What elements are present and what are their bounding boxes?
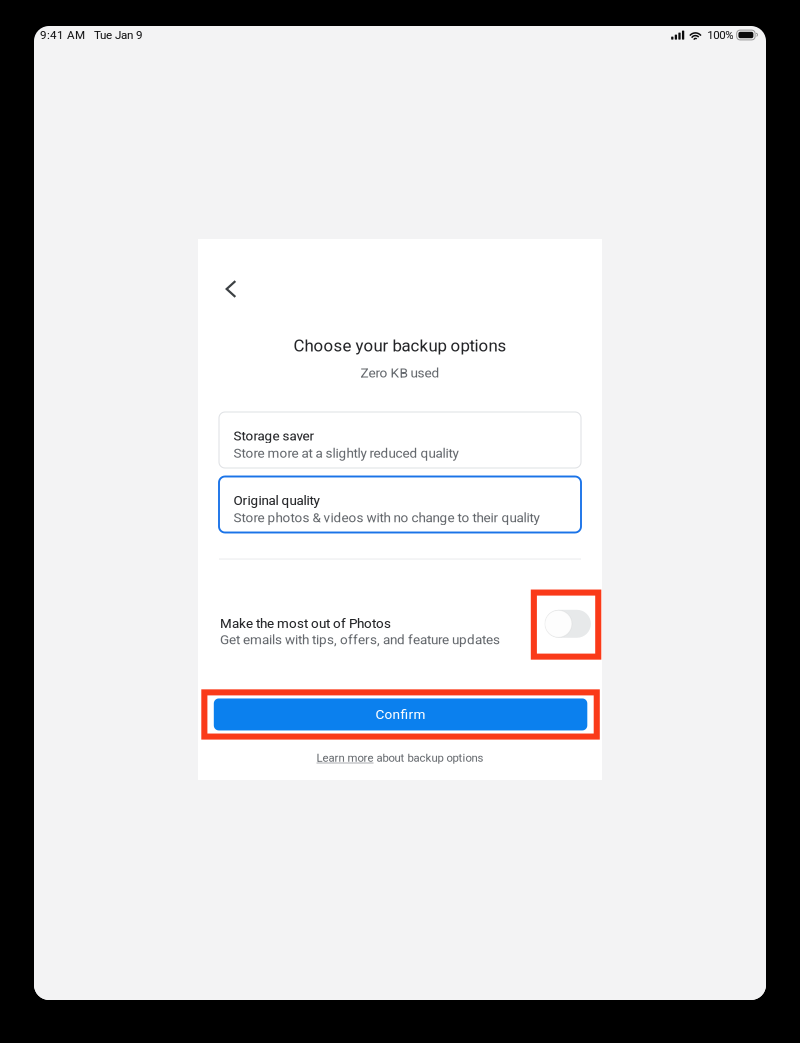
button[interactable]: Original quality: [219, 476, 581, 532]
button[interactable]: Make the most out of Photos: [531, 589, 601, 660]
staticText: 100%: [707, 28, 733, 42]
staticText: Confirm: [376, 706, 426, 722]
staticText: Store more at a slightly reduced quality: [233, 445, 458, 461]
staticText: Original quality: [233, 492, 319, 508]
staticText: Make the most out of Photos: [220, 615, 391, 631]
staticText: Tue Jan 9: [94, 28, 143, 42]
button[interactable]: Storage saver: [219, 412, 581, 468]
button[interactable]: Learn more about backup options: [198, 746, 602, 770]
staticText: 9:41 AM: [40, 28, 85, 42]
staticText: Choose your backup options: [293, 336, 506, 356]
button[interactable]: Confirm: [201, 689, 600, 740]
staticText: Learn more about backup options: [316, 751, 483, 765]
staticText: Get emails with tips, offers, and featur…: [220, 632, 500, 647]
staticText: Zero KB used: [360, 365, 439, 381]
button[interactable]: Back: [213, 271, 249, 307]
staticText: Store photos & videos with no change to …: [233, 510, 539, 525]
staticText: Storage saver: [233, 428, 314, 444]
